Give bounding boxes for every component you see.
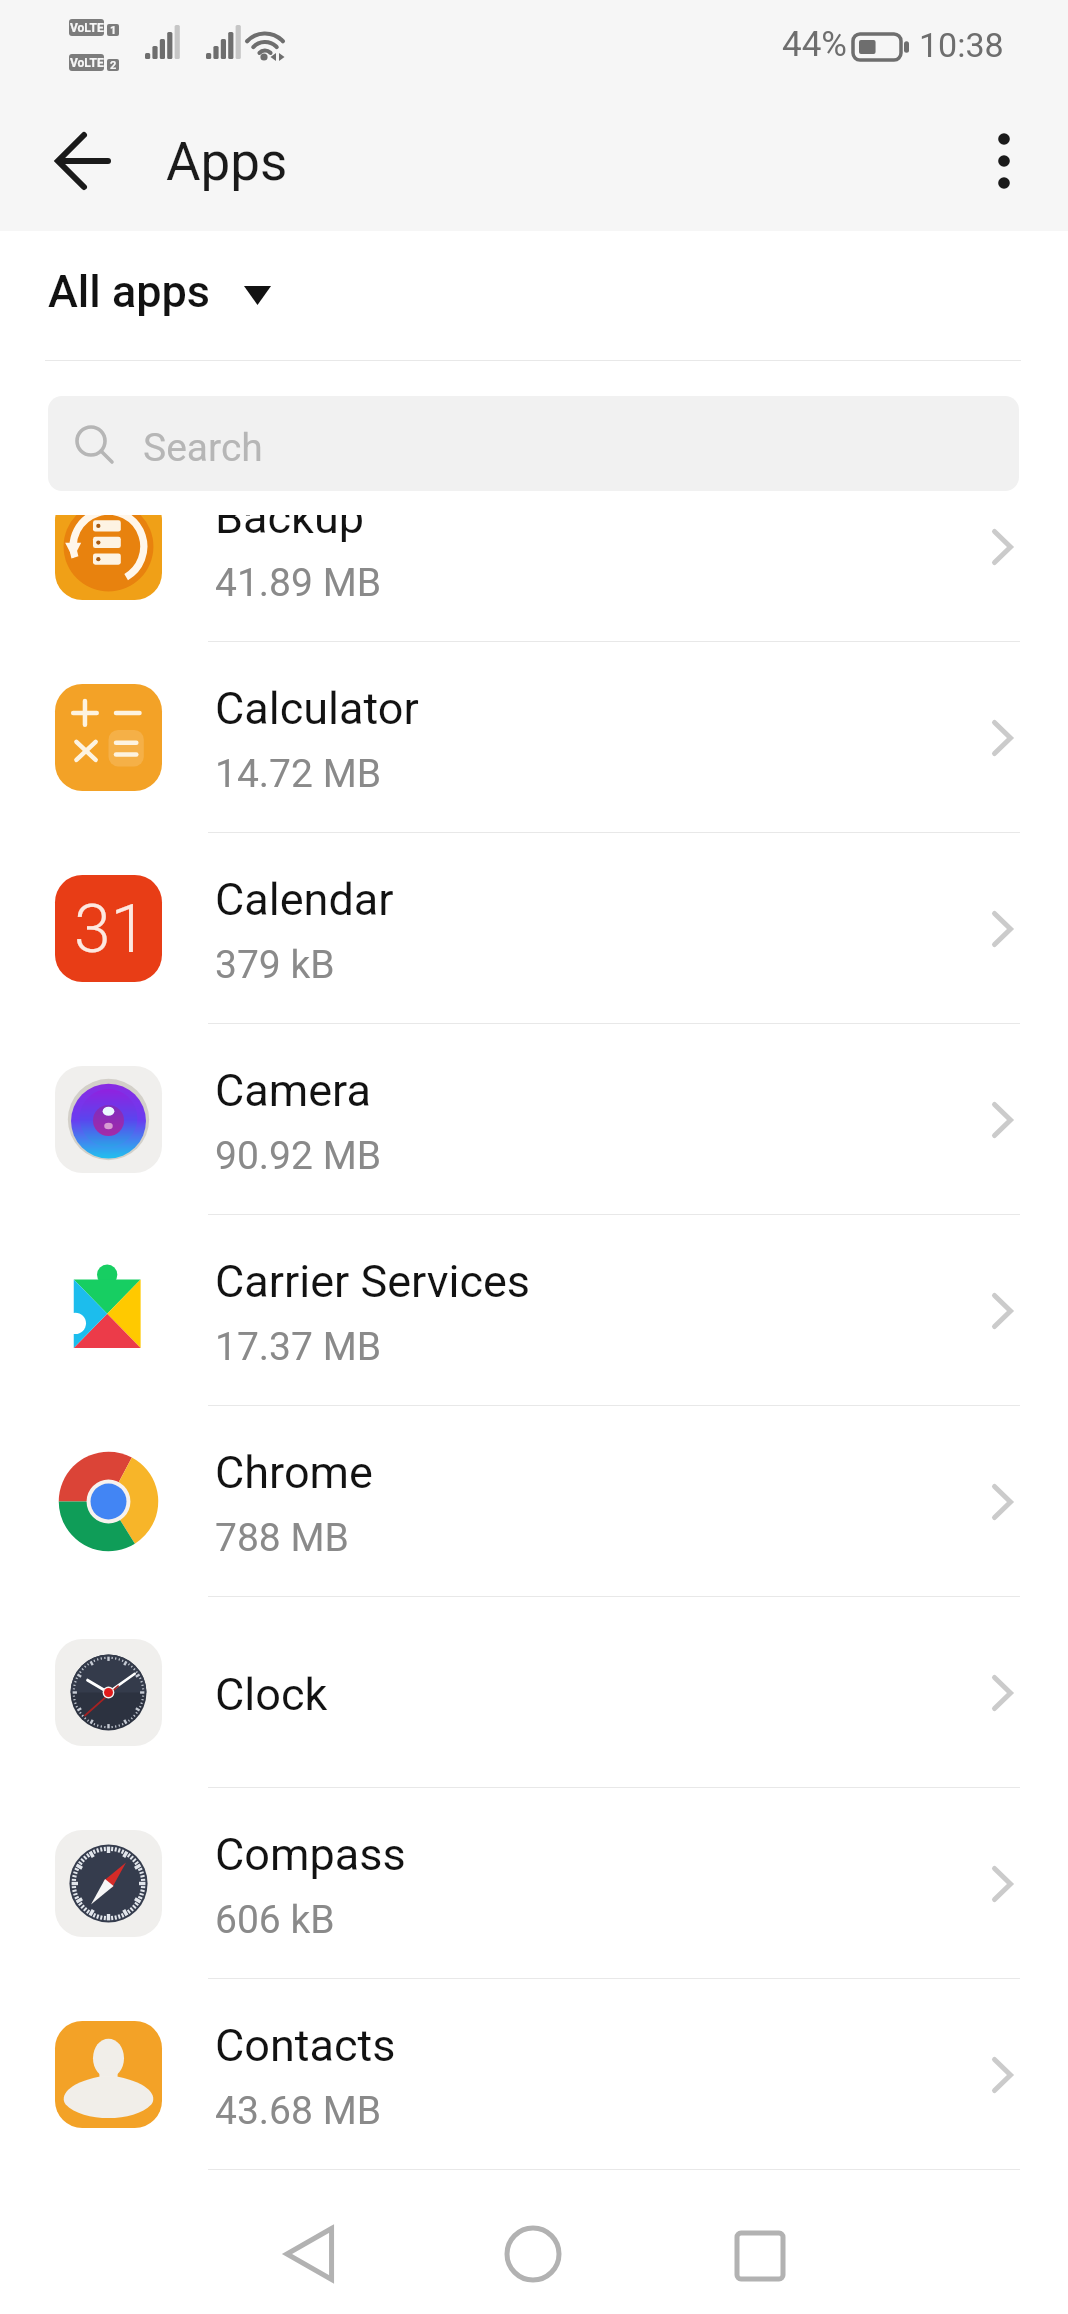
- button[interactable]: Search: [48, 396, 1019, 491]
- staticText: 379 kB: [215, 942, 335, 988]
- staticText: Calendar: [215, 873, 394, 926]
- button[interactable]: More options: [946, 114, 1050, 218]
- staticText: 31: [74, 891, 148, 968]
- staticText: Contacts: [215, 2019, 396, 2072]
- button[interactable]: Camera: [0, 1024, 1068, 1215]
- staticText: VoLTE: [70, 21, 104, 35]
- button[interactable]: Compass: [0, 1788, 1068, 1979]
- staticText: Compass: [215, 1828, 406, 1881]
- button[interactable]: Backup: [0, 515, 1068, 642]
- button[interactable]: Chrome: [0, 1406, 1068, 1597]
- button[interactable]: Carrier Services: [0, 1215, 1068, 1406]
- staticText: Carrier Services: [215, 1255, 531, 1308]
- staticText: Calculator: [215, 682, 419, 735]
- button[interactable]: Back: [30, 114, 134, 218]
- staticText: VoLTE: [70, 56, 104, 70]
- button[interactable]: Calculator: [0, 642, 1068, 833]
- staticText: 17.37 MB: [215, 1324, 381, 1370]
- staticText: 90.92 MB: [215, 1133, 381, 1179]
- staticText: 1: [110, 24, 117, 36]
- button[interactable]: Recents: [700, 2196, 820, 2314]
- staticText: Camera: [215, 1064, 371, 1117]
- staticText: 41.89 MB: [215, 560, 381, 606]
- staticText: All apps: [48, 265, 210, 318]
- staticText: Apps: [166, 131, 288, 193]
- staticText: 788 MB: [215, 1515, 349, 1561]
- staticText: Clock: [215, 1668, 328, 1721]
- button[interactable]: Clock: [0, 1597, 1068, 1788]
- button[interactable]: 31: [0, 833, 1068, 1024]
- button[interactable]: All apps: [48, 265, 271, 318]
- button[interactable]: Back: [253, 2194, 373, 2314]
- staticText: 44%: [782, 24, 847, 65]
- staticText: 10:38: [919, 25, 1004, 65]
- staticText: 14.72 MB: [215, 751, 381, 797]
- button[interactable]: Home: [473, 2194, 593, 2314]
- button[interactable]: Contacts: [0, 1979, 1068, 2170]
- staticText: Chrome: [215, 1446, 373, 1499]
- staticText: 43.68 MB: [215, 2088, 381, 2134]
- staticText: 606 kB: [215, 1897, 335, 1943]
- staticText: Search: [143, 425, 263, 471]
- staticText: Backup: [215, 515, 364, 544]
- staticText: 2: [110, 59, 117, 71]
